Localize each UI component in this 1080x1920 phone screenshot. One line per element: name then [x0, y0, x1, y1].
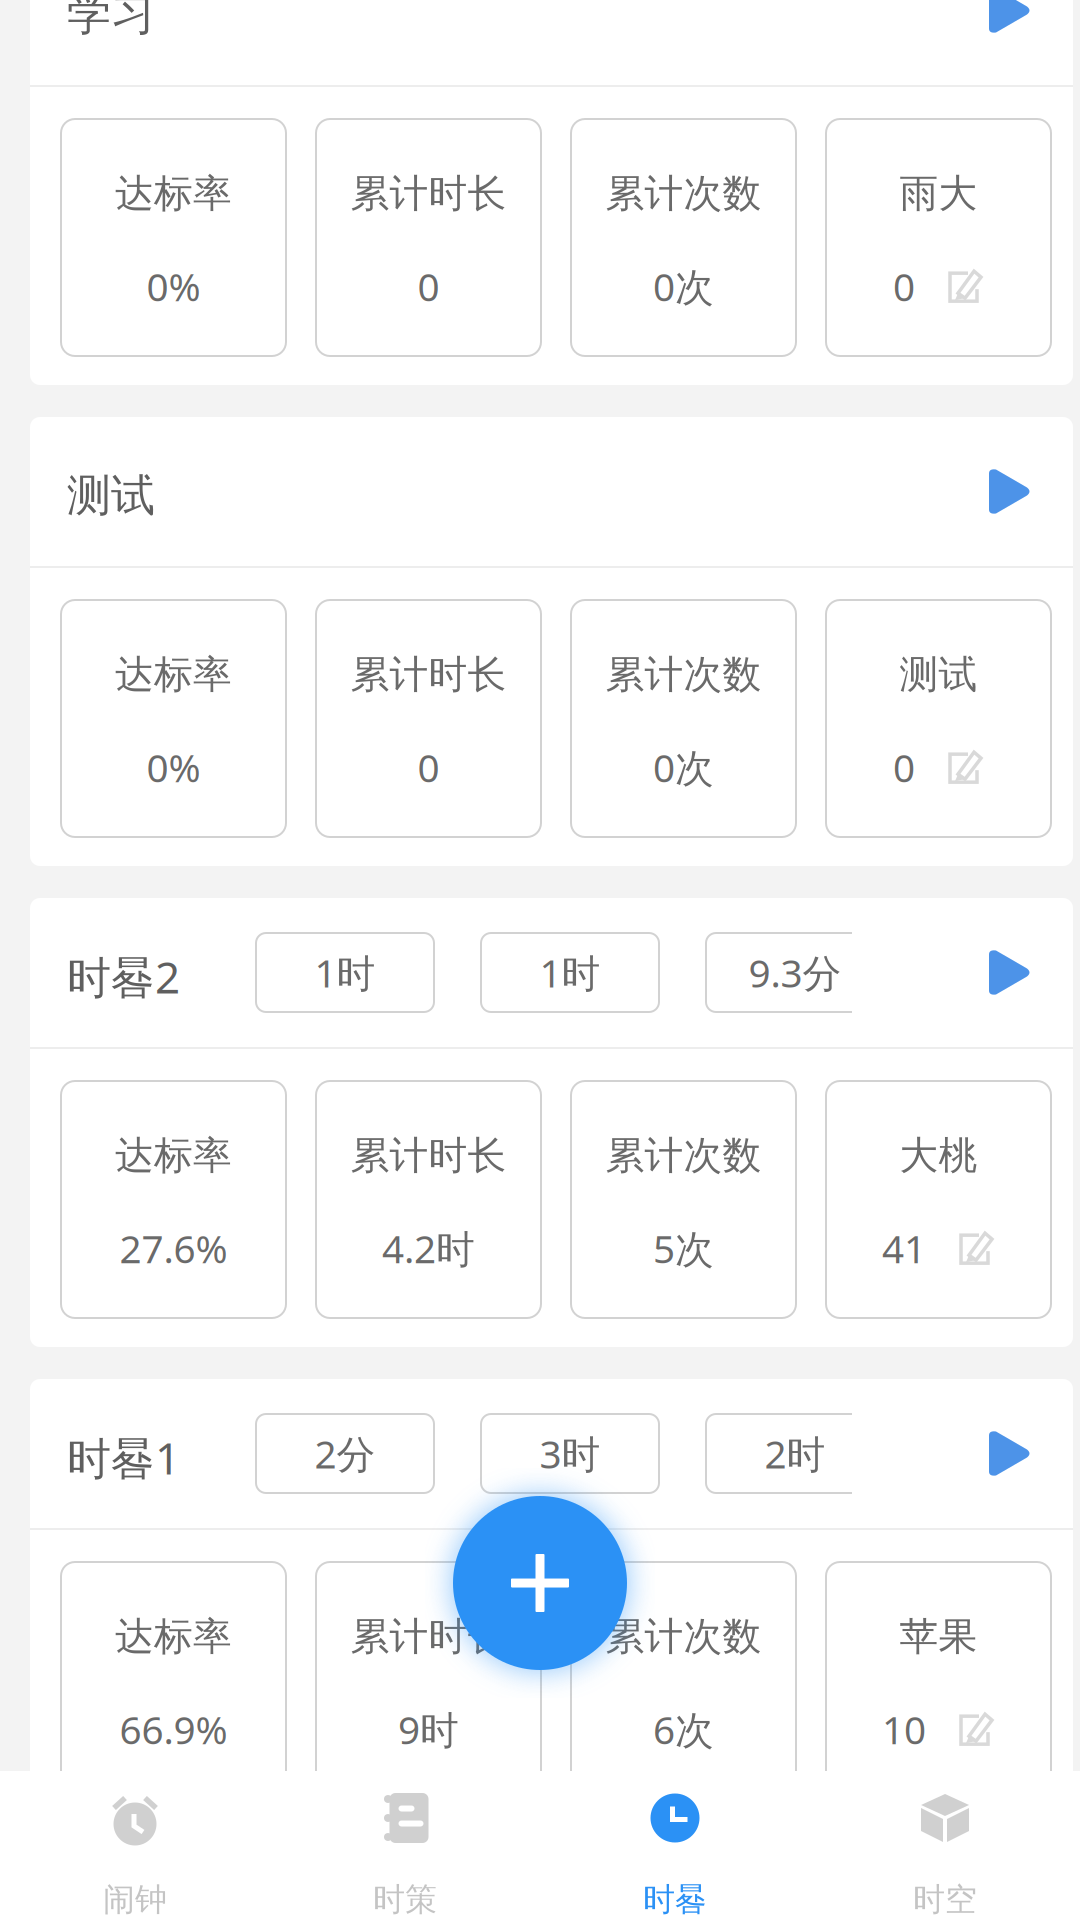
- staticText: 达标率: [115, 1132, 232, 1179]
- button[interactable]: 累计次数: [571, 600, 796, 837]
- button[interactable]: 达标率: [61, 600, 286, 837]
- button[interactable]: Start: [988, 1428, 1073, 1478]
- staticText: 雨大: [899, 170, 977, 217]
- button[interactable]: 时策: [270, 1771, 540, 1920]
- button[interactable]: 闹钟: [0, 1771, 270, 1920]
- staticText: 累计次数: [605, 651, 761, 698]
- staticText: 累计时长: [350, 651, 506, 698]
- button[interactable]: 达标率: [61, 1081, 286, 1318]
- staticText: 累计时长: [350, 1132, 506, 1179]
- button[interactable]: 累计次数: [571, 1562, 796, 1799]
- button[interactable]: 1时: [481, 933, 659, 1012]
- staticText: 时晷1: [67, 1428, 180, 1487]
- button[interactable]: 时晷: [540, 1771, 810, 1920]
- staticText: 累计时长: [350, 1613, 506, 1660]
- button[interactable]: 累计时长: [316, 600, 541, 837]
- button[interactable]: 累计时长: [316, 119, 541, 356]
- staticText: 6次: [653, 1703, 714, 1755]
- staticText: 0: [417, 260, 439, 312]
- staticText: 达标率: [115, 1613, 232, 1660]
- staticText: 9.3分: [748, 947, 841, 998]
- staticText: 66.9%: [119, 1703, 227, 1755]
- staticText: 2分: [314, 1428, 375, 1479]
- staticText: 10: [882, 1703, 926, 1755]
- staticText: 累计次数: [605, 1613, 761, 1660]
- button[interactable]: Start: [988, 947, 1073, 997]
- staticText: 累计次数: [605, 1132, 761, 1179]
- staticText: 累计次数: [605, 170, 761, 217]
- button[interactable]: 达标率: [61, 119, 286, 356]
- button[interactable]: 累计时长: [316, 1081, 541, 1318]
- staticText: 大桃: [899, 1132, 977, 1179]
- staticText: 27.6%: [119, 1222, 227, 1274]
- staticText: 达标率: [115, 170, 232, 217]
- button[interactable]: Start: [988, 0, 1073, 35]
- staticText: 1时: [314, 947, 375, 998]
- button[interactable]: 雨大: [826, 119, 1051, 356]
- staticText: 9时: [398, 1703, 459, 1755]
- staticText: 时晷: [643, 1880, 707, 1919]
- button[interactable]: Start: [988, 466, 1073, 516]
- staticText: 0次: [653, 741, 714, 793]
- staticText: 学习: [67, 0, 155, 41]
- button[interactable]: 累计次数: [571, 1081, 796, 1318]
- staticText: 测试: [67, 468, 155, 522]
- staticText: 苹果: [899, 1613, 977, 1660]
- staticText: 0: [417, 741, 439, 793]
- staticText: 0%: [146, 260, 200, 312]
- staticText: 0%: [146, 741, 200, 793]
- button[interactable]: 达标率: [61, 1562, 286, 1799]
- staticText: 闹钟: [103, 1880, 167, 1919]
- staticText: 1时: [539, 947, 600, 998]
- staticText: 时策: [373, 1880, 437, 1919]
- button[interactable]: 2时: [706, 1414, 884, 1493]
- staticText: 达标率: [115, 651, 232, 698]
- staticText: 0: [893, 260, 915, 312]
- button[interactable]: 9.3分: [706, 933, 884, 1012]
- button[interactable]: 时空: [810, 1771, 1080, 1920]
- button[interactable]: 苹果: [826, 1562, 1051, 1799]
- staticText: 4.2时: [382, 1222, 475, 1274]
- button[interactable]: 3时: [481, 1414, 659, 1493]
- button[interactable]: 1时: [256, 933, 434, 1012]
- button[interactable]: Add: [453, 1496, 627, 1670]
- staticText: 3时: [539, 1428, 600, 1479]
- staticText: 0次: [653, 260, 714, 312]
- staticText: 2时: [764, 1428, 825, 1479]
- staticText: 5次: [653, 1222, 714, 1274]
- button[interactable]: 累计次数: [571, 119, 796, 356]
- staticText: 41: [882, 1222, 926, 1274]
- button[interactable]: 2分: [256, 1414, 434, 1493]
- button[interactable]: 累计时长: [316, 1562, 541, 1799]
- button[interactable]: 大桃: [826, 1081, 1051, 1318]
- staticText: 时晷2: [67, 947, 180, 1006]
- staticText: 累计时长: [350, 170, 506, 217]
- staticText: 测试: [899, 651, 977, 698]
- staticText: 0: [893, 741, 915, 793]
- button[interactable]: 测试: [826, 600, 1051, 837]
- staticText: 时空: [913, 1880, 977, 1919]
